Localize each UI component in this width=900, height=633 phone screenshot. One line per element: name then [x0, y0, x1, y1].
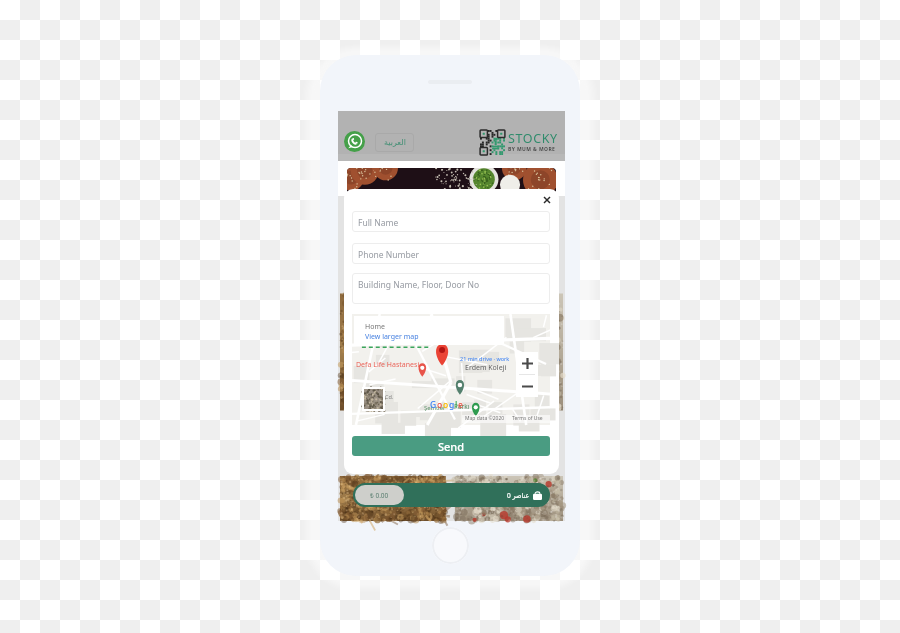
staticText: G [430, 399, 437, 411]
staticText: BY MUM & MORE [508, 146, 556, 153]
staticText: Map data ©2020 [465, 415, 505, 422]
staticText: o [437, 399, 443, 411]
staticText: e [458, 399, 463, 411]
staticText: 21 min drive · work [460, 355, 510, 362]
button[interactable]: Zoom in [516, 352, 538, 374]
button[interactable]: Chat on WhatsApp [344, 131, 365, 152]
staticText: Full Name [358, 217, 399, 229]
button[interactable]: العربية [375, 133, 414, 152]
staticText: ₺ 0.00 [370, 491, 389, 500]
button[interactable]: View larger map [365, 332, 419, 342]
staticText: عناصر 0 [507, 491, 530, 500]
staticText: Defa Life Hastanesi [356, 360, 420, 370]
button[interactable]: Full Name [352, 211, 550, 232]
staticText: Phone Number [358, 249, 419, 261]
button[interactable]: Close [539, 192, 555, 208]
staticText: Terms of Use [512, 415, 543, 422]
staticText: g [449, 399, 455, 411]
staticText: Cd. [385, 393, 394, 400]
staticText: Şehitler [424, 404, 446, 412]
button[interactable]: Phone Number [352, 243, 550, 264]
staticText: Home [365, 322, 385, 332]
staticText: Building Name, Floor, Door No [358, 279, 480, 291]
staticText: العربية [384, 138, 406, 147]
button[interactable]: Zoom out [516, 375, 538, 397]
staticText: Parkı [454, 402, 470, 411]
staticText: Erdem Koleji [465, 363, 507, 373]
button[interactable]: ₺ 0.00 [353, 483, 550, 507]
button[interactable]: Street view [362, 387, 385, 411]
staticText: STOCKY [508, 130, 558, 147]
button[interactable]: Building Name, Floor, Door No [352, 273, 550, 304]
button[interactable]: Send [352, 436, 550, 456]
staticText: o [443, 399, 449, 411]
staticText: Send [438, 439, 465, 454]
staticText: l [455, 399, 458, 411]
